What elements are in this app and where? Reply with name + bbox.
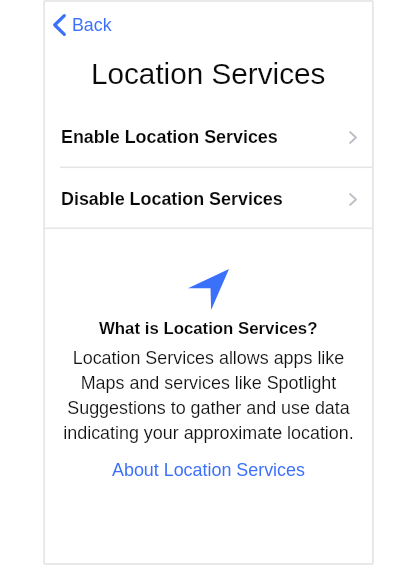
button[interactable]: Enable Location Services: [44, 106, 373, 168]
staticText: What is Location Services?: [99, 319, 318, 338]
button[interactable]: Disable Location Services: [44, 168, 373, 230]
other: Back: [53, 14, 66, 36]
staticText: Location Services: [91, 57, 326, 90]
staticText: About Location Services: [112, 460, 305, 480]
other: Open Enable Location Services: [349, 131, 357, 144]
staticText: Disable Location Services: [61, 189, 283, 209]
button[interactable]: About Location Services: [106, 456, 311, 484]
other: Open Disable Location Services: [349, 193, 357, 206]
staticText: Enable Location Services: [61, 127, 278, 147]
staticText: Back: [72, 15, 112, 35]
button[interactable]: Back: [49, 9, 120, 41]
staticText: Location Services allows apps like Maps …: [53, 348, 364, 443]
